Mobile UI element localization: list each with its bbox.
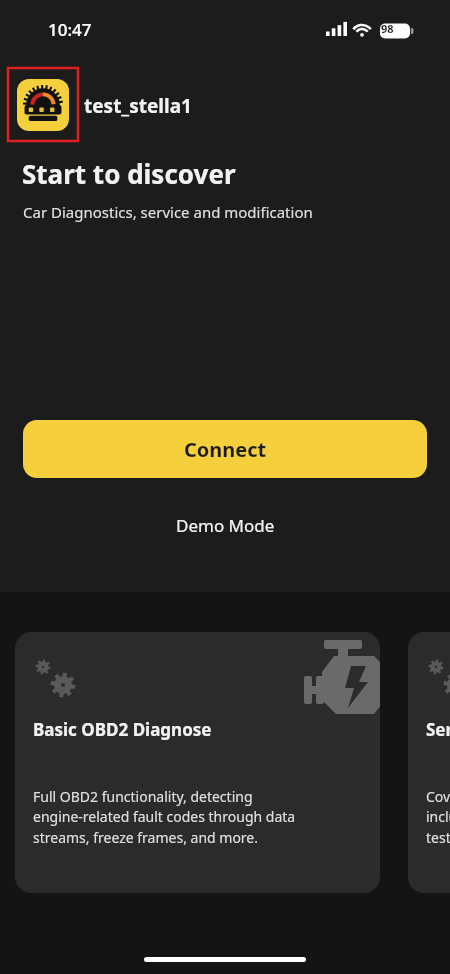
staticText: Full OBD2 functionality, detecting engin… xyxy=(33,787,296,848)
staticText: Covers numerous service functions, inclu… xyxy=(426,787,450,848)
staticText: Service Functions xyxy=(426,718,450,741)
staticText: Connect xyxy=(184,436,267,463)
button[interactable]: Connect xyxy=(23,420,427,478)
staticText: 10:47 xyxy=(48,18,92,41)
staticText: Basic OBD2 Diagnose xyxy=(33,718,212,741)
staticText: Demo Mode xyxy=(176,514,275,537)
button[interactable]: Service Functions xyxy=(408,632,450,893)
staticText: test_stella1 xyxy=(84,93,192,119)
staticText: 98 xyxy=(381,21,394,36)
staticText: Car Diagnostics, service and modificatio… xyxy=(23,202,313,222)
button[interactable]: Demo Mode xyxy=(160,508,290,542)
button[interactable]: Basic OBD2 Diagnose xyxy=(15,632,380,893)
button[interactable]: App icon xyxy=(8,68,78,141)
staticText: Start to discover xyxy=(22,156,236,191)
